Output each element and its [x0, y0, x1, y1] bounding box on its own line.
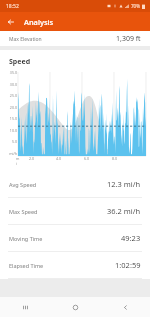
button[interactable]: Back	[100, 297, 150, 317]
staticText: 10.0	[2, 128, 17, 133]
staticText: 36.2 mi/h	[107, 206, 141, 216]
staticText: 1:02:59	[115, 260, 141, 270]
button[interactable]: Moving Time	[0, 225, 150, 251]
staticText: mi/h	[2, 151, 17, 156]
button[interactable]: Max Speed	[0, 198, 150, 224]
staticText: 6.0	[84, 156, 90, 161]
staticText: 30.0	[2, 82, 17, 87]
staticText: 15.0	[2, 116, 17, 121]
staticText: Avg Speed	[9, 181, 37, 188]
button[interactable]: Max Elevation	[0, 31, 150, 46]
button[interactable]: Avg Speed	[0, 171, 150, 197]
button[interactable]: Elapsed Time	[0, 252, 150, 278]
staticText: 2.0	[29, 156, 35, 161]
staticText: Max Elevation	[9, 36, 42, 43]
button[interactable]: Back	[4, 15, 18, 29]
staticText: Elapsed Time	[9, 262, 44, 269]
staticText: Moving Time	[9, 235, 43, 242]
staticText: 8.0	[112, 156, 118, 161]
staticText: 70%	[131, 3, 140, 9]
staticText: Analysis	[24, 17, 54, 27]
button[interactable]: Recents	[0, 297, 50, 317]
staticText: 1,309 ft	[116, 34, 141, 44]
staticText: 18:52	[6, 3, 19, 10]
staticText: Max Speed	[9, 208, 38, 215]
staticText: 35.0	[2, 70, 17, 75]
staticText: 4.0	[56, 156, 62, 161]
staticText: 49:23	[121, 233, 141, 243]
staticText: Speed	[9, 57, 31, 67]
staticText: 20.0	[2, 105, 17, 110]
staticText: mi	[16, 156, 18, 166]
staticText: 12.3 mi/h	[107, 179, 141, 189]
button[interactable]: Home	[50, 297, 100, 317]
staticText: 5.0	[2, 139, 17, 144]
staticText: 25.0	[2, 93, 17, 98]
